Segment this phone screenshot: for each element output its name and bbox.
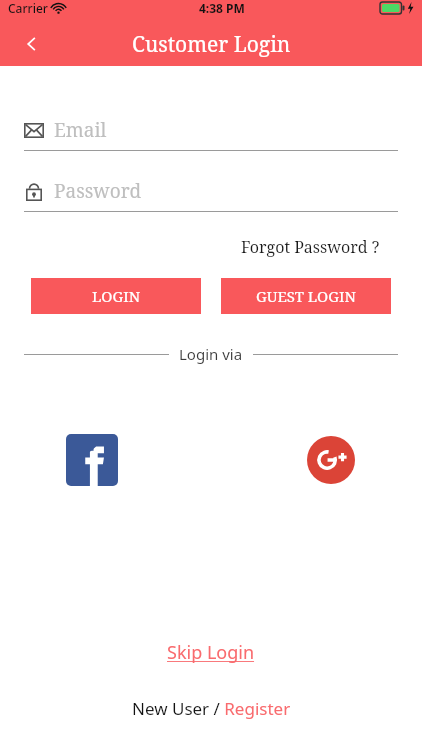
button[interactable]: Skip Login [157, 634, 265, 671]
staticText: Carrier [8, 0, 48, 16]
staticText: GUEST LOGIN [256, 286, 356, 306]
staticText: Login via [179, 344, 243, 364]
staticText: Password [54, 178, 142, 204]
staticText: New User / Register [132, 697, 291, 720]
staticText: 4:38 PM [199, 0, 245, 16]
button[interactable]: GUEST LOGIN [221, 278, 391, 314]
button[interactable]: New User / Register [122, 693, 301, 724]
button[interactable]: Forgot Password ? [239, 232, 382, 262]
staticText: Customer Login [132, 30, 291, 59]
staticText: Skip Login [167, 640, 255, 665]
button[interactable]: LOGIN [31, 278, 201, 314]
button[interactable]: Password [24, 175, 398, 212]
staticText: LOGIN [92, 286, 141, 306]
button[interactable]: Back [12, 24, 52, 64]
button[interactable]: Email [24, 114, 398, 151]
staticText: Forgot Password ? [241, 236, 380, 258]
staticText: Email [54, 117, 107, 143]
button[interactable]: Login with Facebook [66, 434, 118, 486]
button[interactable]: Login with Google Plus [305, 434, 357, 486]
